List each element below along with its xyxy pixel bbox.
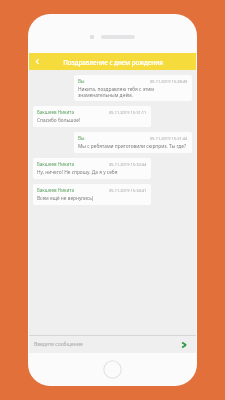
staticText: Введите сообщение [34,341,83,348]
staticText: 05.11.2019 15:32:44 [109,162,147,167]
button[interactable]: Бакшеев Никита [33,106,151,127]
staticText: Вы [78,78,85,84]
button[interactable]: Бакшеев Никита [33,184,151,205]
staticText: Бакшеев Никита [37,187,75,193]
staticText: Всем ещё не вернулись) [37,195,94,202]
button[interactable]: Back [29,53,45,70]
button[interactable]: Вы [74,132,192,153]
staticText: 05.11.2019 15:28:49 [150,79,188,84]
staticText: Спасибо большое! [37,117,81,124]
staticText: Поздравление с днем рождения [63,58,163,66]
staticText: Вы [78,135,85,141]
button[interactable]: Send [177,338,191,352]
staticText: Ну, ничего! Не спрошу. Да я у себя [37,169,118,176]
button[interactable]: Бакшеев Никита [33,158,151,179]
staticText: 05.11.2019 15:34:41 [109,188,147,193]
button[interactable]: Вы [74,75,192,101]
staticText: 05.11.2019 15:31:44 [150,136,188,141]
staticText: 05.11.2019 15:31:11 [109,110,147,115]
staticText: Никита, поздравляю тебя с этим знаменате… [78,86,188,98]
staticText: Бакшеев Никита [37,109,75,115]
button[interactable]: Введите сообщение [34,341,177,348]
staticText: Бакшеев Никита [37,161,75,167]
staticText: Мы с ребятами приготовили сюрприз. Ты гд… [78,143,186,150]
